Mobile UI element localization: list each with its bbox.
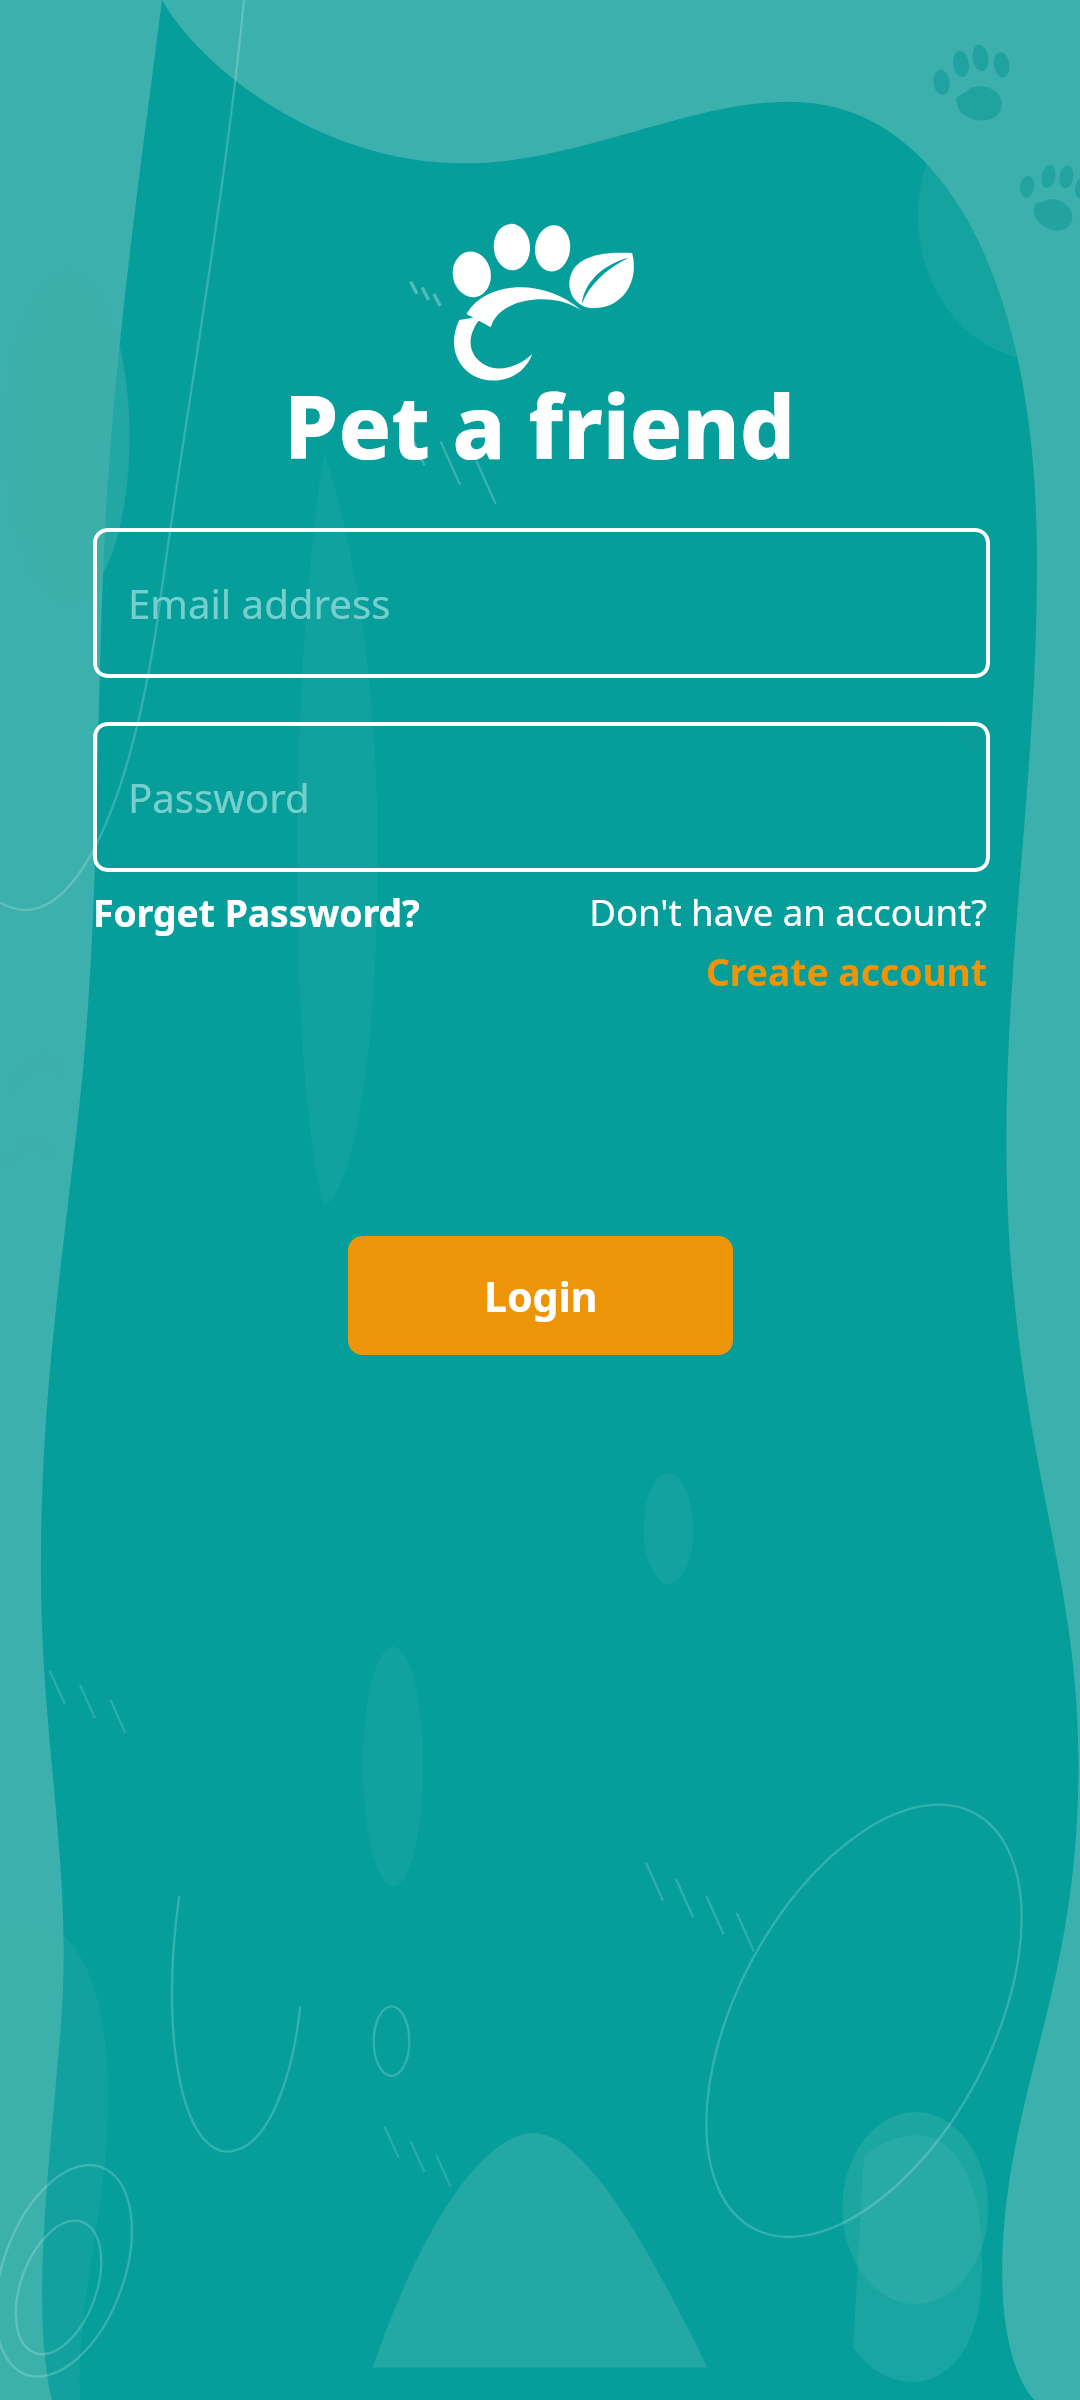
staticText: Forget Password? (93, 887, 420, 938)
staticText: Email address (128, 576, 391, 631)
staticText: Create account (705, 946, 987, 997)
staticText: Don't have an account? (589, 887, 987, 937)
button[interactable]: Forget Password? (93, 887, 420, 938)
staticText: Pet a friend (284, 366, 796, 484)
staticText: Password (128, 770, 310, 825)
button[interactable]: Password (93, 722, 990, 872)
staticText: Login (484, 1268, 598, 1324)
button[interactable]: Email address (93, 528, 990, 678)
button[interactable]: Create account (705, 946, 987, 997)
button[interactable]: Login (348, 1236, 733, 1355)
